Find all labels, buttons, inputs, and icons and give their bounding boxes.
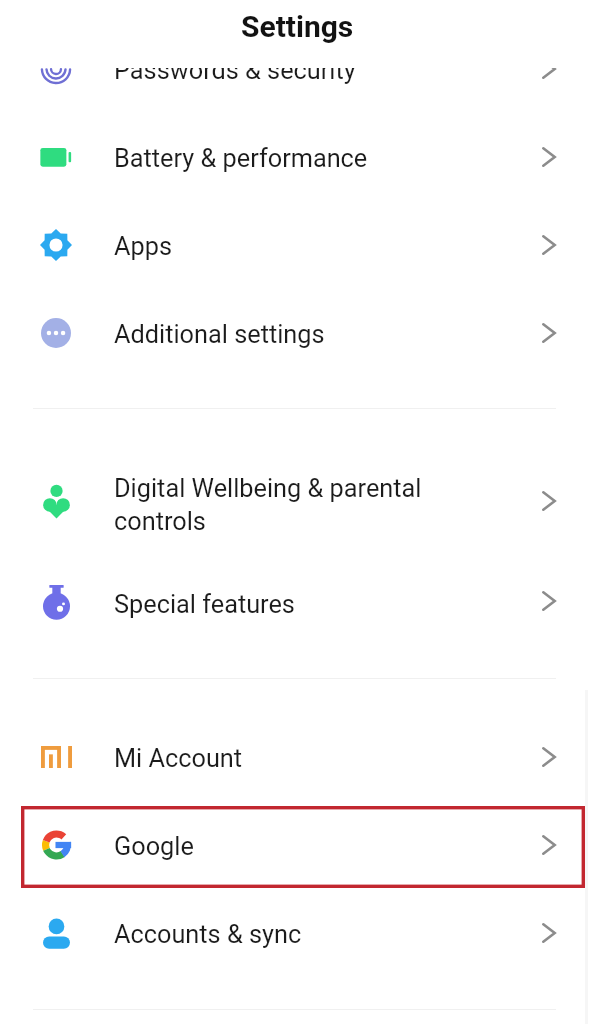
staticText: Digital Wellbeing & parental controls bbox=[114, 474, 517, 536]
staticText: Additional settings bbox=[114, 320, 517, 350]
staticText: Accounts & sync bbox=[114, 920, 517, 950]
staticText: Apps bbox=[114, 232, 517, 262]
staticText: Settings bbox=[241, 9, 354, 44]
button[interactable]: Digital Wellbeing & parental controls bbox=[0, 445, 594, 557]
staticText: Passwords & security bbox=[114, 56, 517, 86]
button[interactable]: Additional settings bbox=[0, 289, 594, 377]
button[interactable]: Battery & performance bbox=[0, 113, 594, 201]
button[interactable]: Accounts & sync bbox=[0, 889, 594, 977]
staticText: Special features bbox=[114, 590, 517, 620]
button[interactable]: Mi Account bbox=[0, 713, 594, 801]
button[interactable]: Apps bbox=[0, 201, 594, 289]
button[interactable]: Passwords & security bbox=[0, 25, 594, 113]
staticText: Battery & performance bbox=[114, 144, 517, 174]
staticText: Google bbox=[114, 832, 517, 862]
button[interactable]: Special features bbox=[0, 557, 594, 645]
staticText: Mi Account bbox=[114, 744, 517, 774]
button[interactable]: Google bbox=[0, 801, 594, 889]
